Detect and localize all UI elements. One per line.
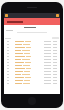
- button[interactable]: [4, 64, 60, 67]
- button[interactable]: Profile: [56, 14, 59, 17]
- button[interactable]: [4, 82, 60, 85]
- button[interactable]: [4, 46, 60, 49]
- button[interactable]: [4, 58, 60, 61]
- button[interactable]: [4, 61, 60, 64]
- button[interactable]: [4, 43, 60, 46]
- button[interactable]: [4, 70, 60, 73]
- other: Home: [28, 97, 36, 105]
- button[interactable]: [4, 79, 60, 82]
- button[interactable]: [4, 73, 60, 76]
- button[interactable]: [4, 67, 60, 70]
- button[interactable]: [4, 52, 60, 55]
- button[interactable]: [4, 49, 60, 52]
- button[interactable]: [4, 55, 60, 58]
- button[interactable]: [4, 40, 60, 43]
- button[interactable]: [4, 76, 60, 79]
- button[interactable]: Menu: [5, 14, 8, 17]
